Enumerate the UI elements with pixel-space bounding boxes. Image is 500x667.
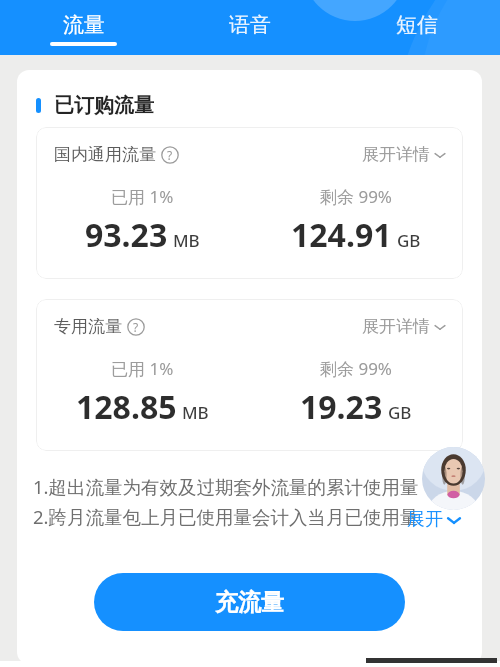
button[interactable]: Help <box>127 318 145 336</box>
staticText: GB <box>388 401 412 424</box>
button[interactable]: 充流量 <box>94 573 405 631</box>
button[interactable]: 展开详情 <box>362 316 447 337</box>
staticText: 19.23 <box>300 385 383 429</box>
staticText: MB <box>173 229 200 252</box>
button[interactable]: 展开详情 <box>362 144 447 165</box>
staticText: 国内通用流量 <box>54 144 156 165</box>
staticText: MB <box>182 401 209 424</box>
staticText: 充流量 <box>215 588 284 617</box>
staticText: 语音 <box>229 12 271 38</box>
button[interactable]: 专用流量 <box>36 299 463 451</box>
staticText: 93.23 <box>85 213 168 257</box>
staticText: 已用 1% <box>111 185 174 208</box>
staticText: 2.跨月流量包上月已使用量会计入当月已使用量 <box>33 504 419 529</box>
staticText: 展开 <box>407 508 443 531</box>
staticText: ? <box>167 147 173 163</box>
button[interactable]: 流量 <box>0 0 166 55</box>
staticText: 剩余 99% <box>320 185 392 208</box>
button[interactable]: 国内通用流量 <box>36 127 463 279</box>
staticText: 展开详情 <box>362 144 430 165</box>
staticText: 流量 <box>63 12 105 38</box>
staticText: 128.85 <box>76 385 177 429</box>
button[interactable]: Help <box>161 146 179 164</box>
staticText: 剩余 99% <box>320 357 392 380</box>
staticText: 展开详情 <box>362 316 430 337</box>
staticText: 1.超出流量为有效及过期套外流量的累计使用量 <box>33 474 419 499</box>
staticText: 已订购流量 <box>54 93 154 118</box>
staticText: 124.91 <box>291 213 392 257</box>
button[interactable]: Customer service <box>422 447 485 510</box>
staticText: 短信 <box>396 12 438 38</box>
staticText: 已用 1% <box>111 357 174 380</box>
staticText: 专用流量 <box>54 316 122 337</box>
staticText: GB <box>397 229 421 252</box>
button[interactable]: 短信 <box>333 0 500 55</box>
button[interactable]: 展开 <box>407 508 463 531</box>
button[interactable]: 语音 <box>166 0 333 55</box>
staticText: ? <box>133 319 139 335</box>
